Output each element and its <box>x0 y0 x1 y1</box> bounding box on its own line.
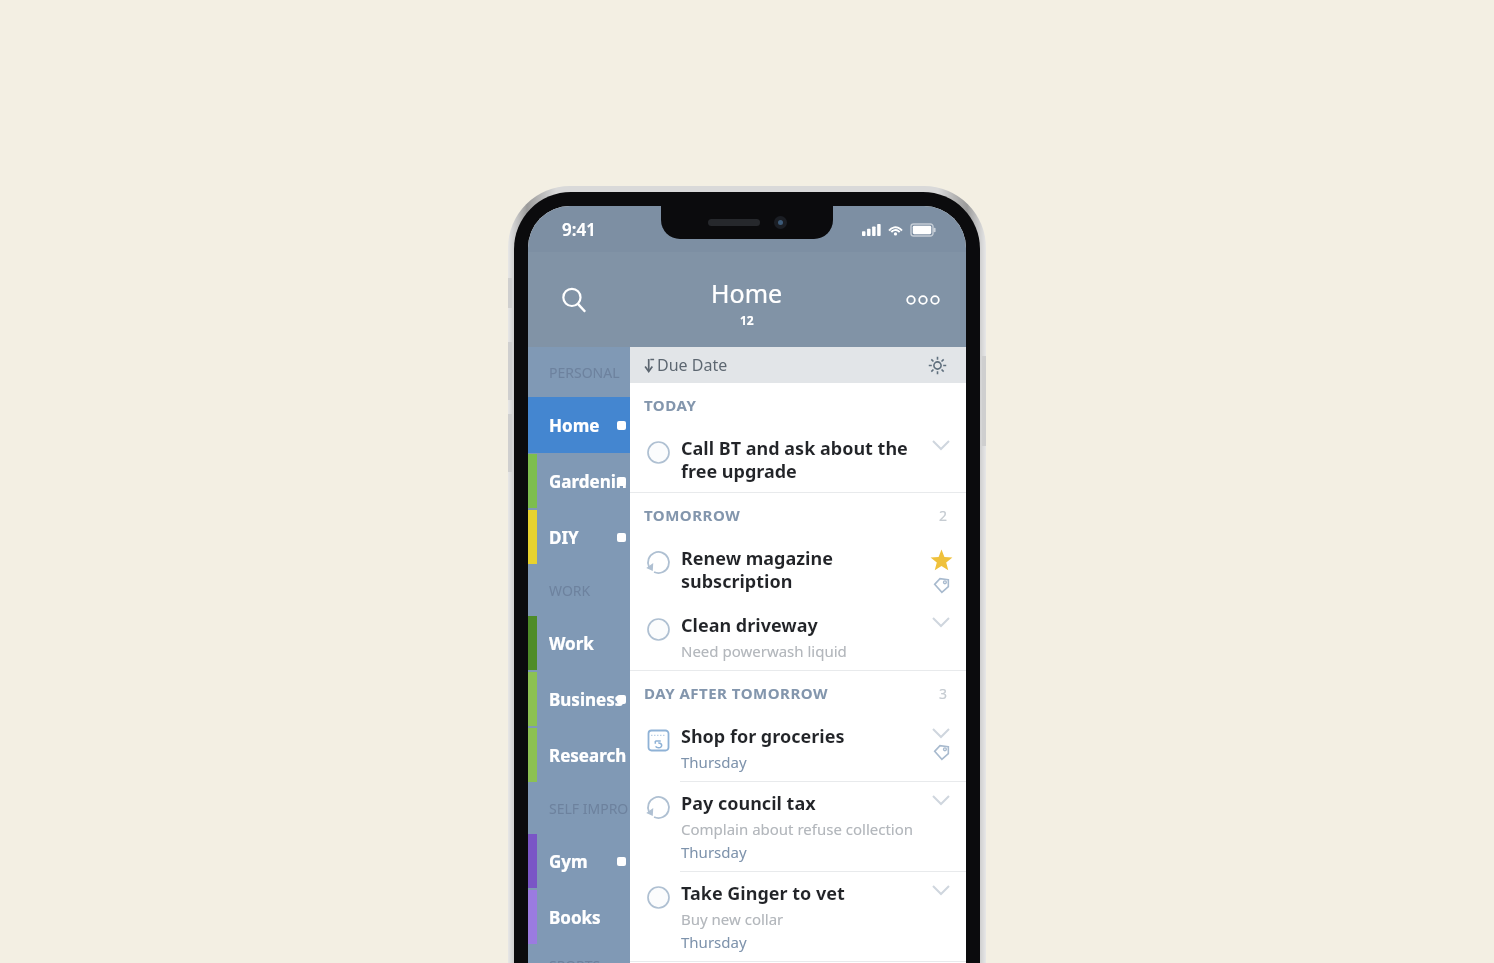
staticText: Pay council tax <box>681 791 816 816</box>
staticText: 9:41 <box>562 218 596 241</box>
staticText: 3 <box>939 684 948 703</box>
staticText: Complain about refuse collection schedul… <box>681 819 920 839</box>
button[interactable]: Shop for groceries <box>630 715 966 781</box>
staticText: Renew magazine subscription <box>681 546 920 593</box>
button[interactable]: DIY <box>528 509 630 565</box>
staticText: Gym <box>549 850 588 873</box>
button[interactable]: Home <box>528 397 630 453</box>
button[interactable]: Research <box>528 727 630 783</box>
staticText: TOMORROW <box>644 505 741 525</box>
staticText: Need powerwash liquid <box>681 641 847 661</box>
staticText: Shop for groceries <box>681 724 845 749</box>
button[interactable]: Search <box>548 274 600 326</box>
button[interactable]: Work <box>528 615 630 671</box>
staticText: Work <box>549 632 594 655</box>
staticText: WORK <box>549 581 591 600</box>
button[interactable]: Gym <box>528 833 630 889</box>
staticText: Take Ginger to vet <box>681 881 845 906</box>
staticText: 12 <box>740 312 754 328</box>
staticText: Thursday <box>681 932 747 952</box>
button[interactable]: SELF IMPROVEMENT <box>528 783 630 833</box>
staticText: DIY <box>549 526 579 549</box>
button[interactable]: Clean driveway <box>630 604 966 670</box>
button[interactable]: PERSONAL <box>528 347 630 397</box>
staticText: Buy new collar <box>681 909 784 929</box>
staticText: Home <box>549 414 600 437</box>
button[interactable]: SPORTS <box>528 945 630 963</box>
staticText: Books <box>549 906 601 929</box>
button[interactable]: WORK <box>528 565 630 615</box>
button[interactable]: Books <box>528 889 630 945</box>
button[interactable]: Business <box>528 671 630 727</box>
staticText: SPORTS <box>549 956 601 963</box>
staticText: Thursday <box>681 842 747 862</box>
staticText: Clean driveway <box>681 613 818 638</box>
button[interactable]: Renew magazine subscription <box>630 537 966 604</box>
button[interactable]: More options <box>894 275 952 325</box>
staticText: Research <box>549 744 627 767</box>
button[interactable]: Gardening <box>528 453 630 509</box>
staticText: 2 <box>939 506 948 525</box>
staticText: Gardening <box>549 470 630 493</box>
staticText: Business <box>549 688 624 711</box>
button[interactable]: Call BT and ask about the free upgrade <box>630 427 966 492</box>
staticText: DAY AFTER TOMORROW <box>644 683 828 703</box>
staticText: SELF IMPROVEMENT <box>549 799 630 818</box>
button[interactable]: Pay council tax <box>630 782 966 871</box>
staticText: TODAY <box>644 395 697 415</box>
button[interactable]: Take Ginger to vet <box>630 872 966 961</box>
staticText: Thursday <box>681 752 747 772</box>
staticText: Home <box>711 276 783 310</box>
staticText: Due Date <box>657 354 728 376</box>
button[interactable]: Theme <box>922 350 952 380</box>
staticText: PERSONAL <box>549 363 620 382</box>
button[interactable]: Due Date <box>630 347 966 383</box>
staticText: Call BT and ask about the free upgrade <box>681 436 908 483</box>
